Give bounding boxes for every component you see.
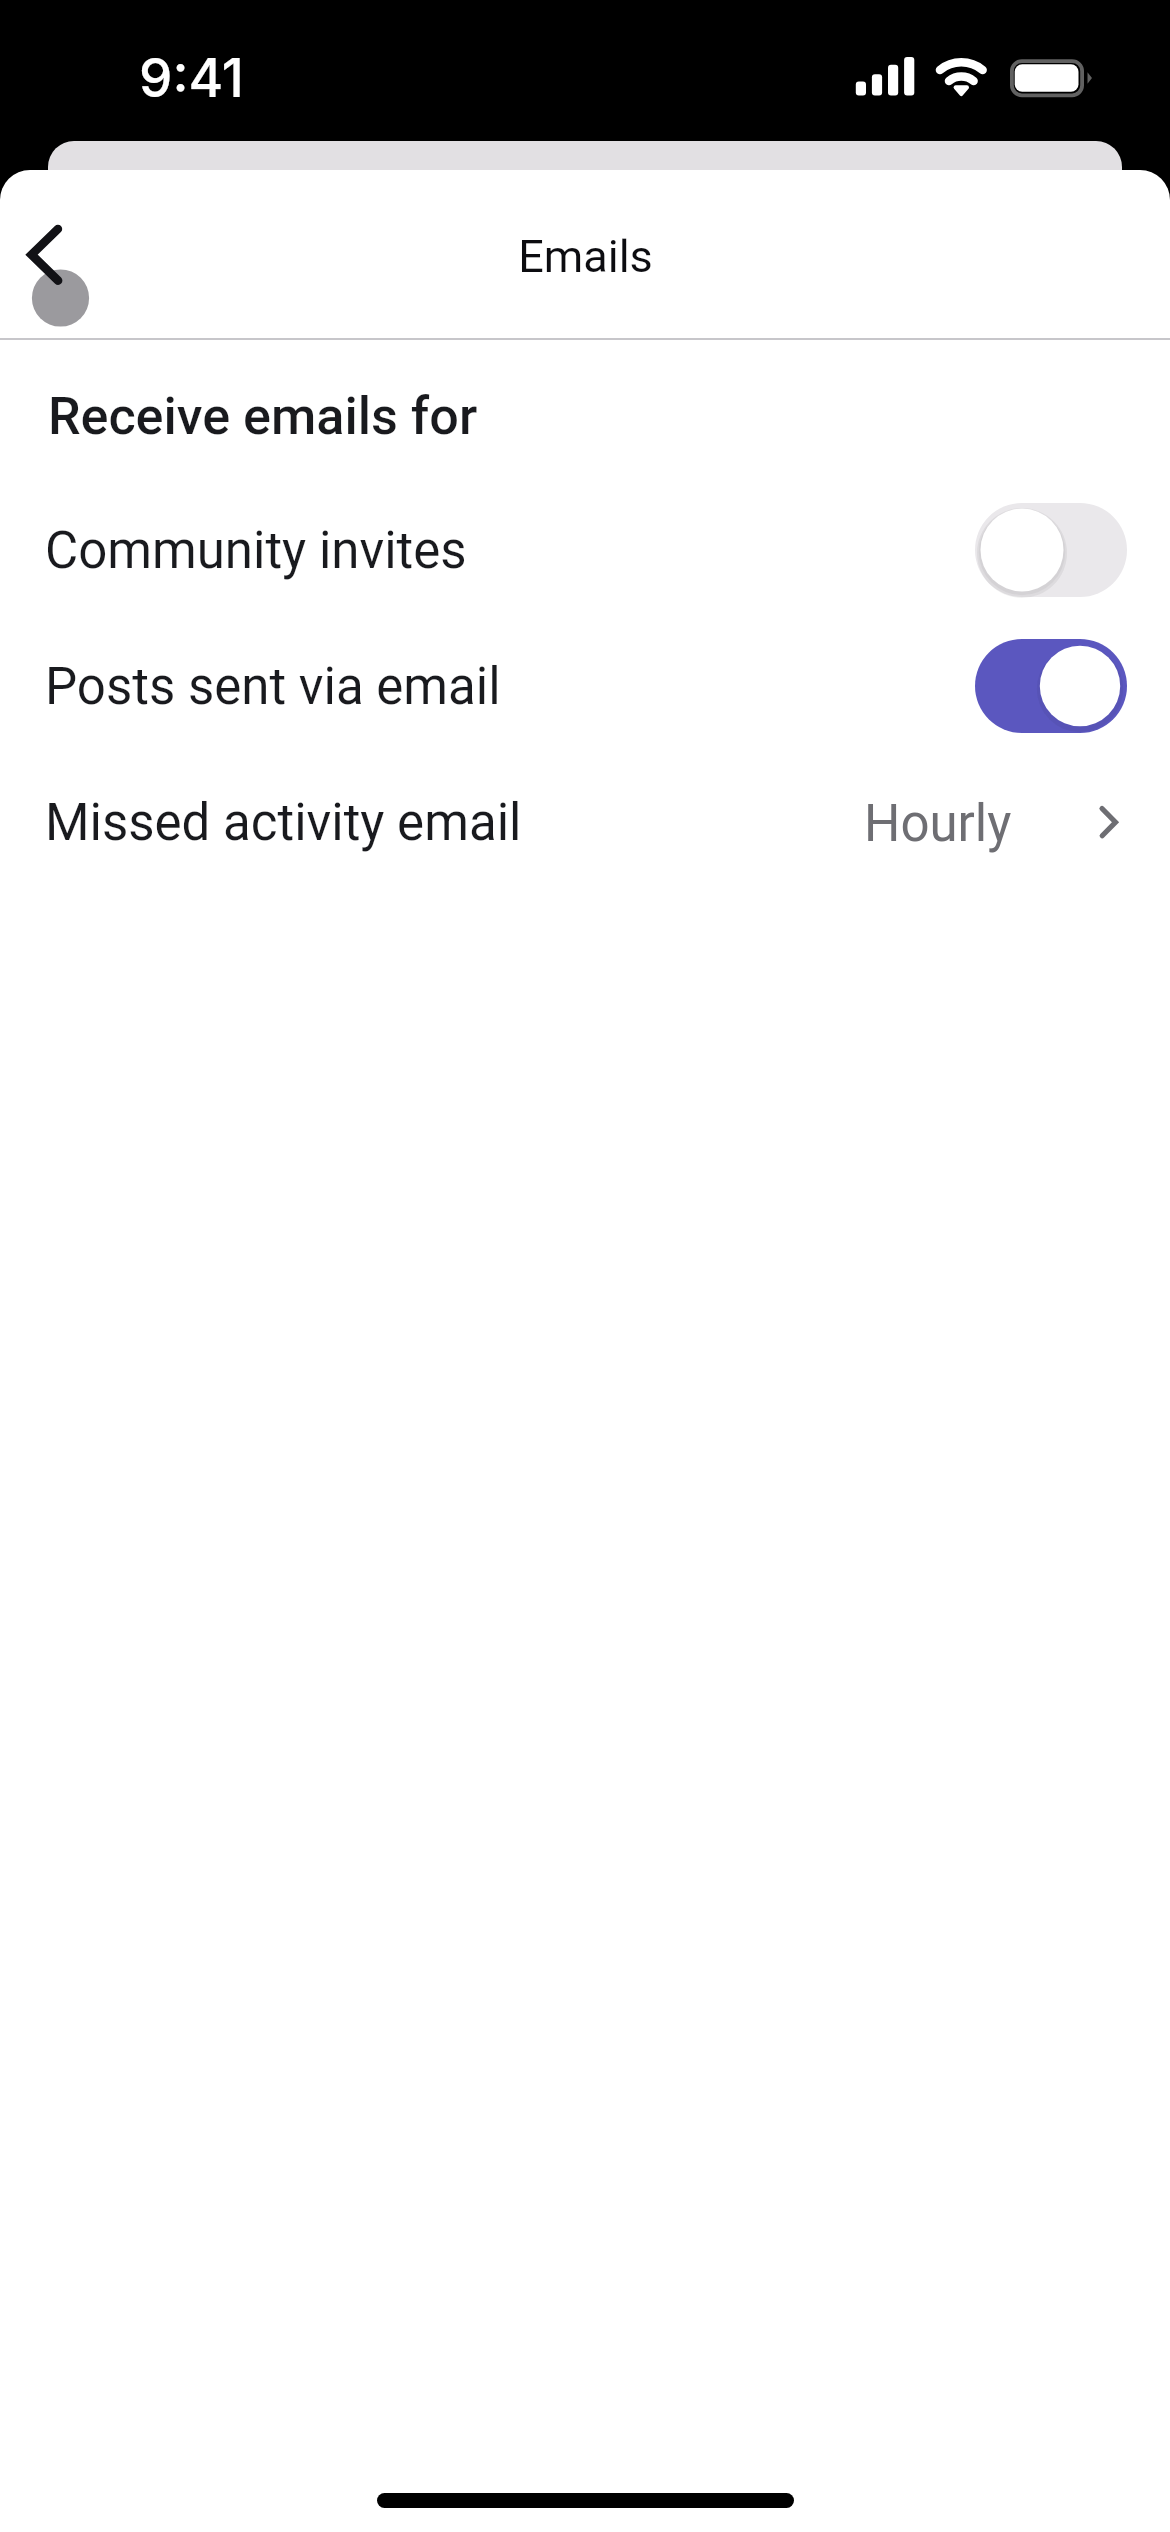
button[interactable]: Switch off bbox=[975, 503, 1127, 597]
staticText: Receive emails for bbox=[48, 386, 478, 447]
staticText: 9:41 bbox=[139, 46, 244, 110]
staticText: Community invites bbox=[45, 521, 467, 581]
button[interactable]: Community invites bbox=[0, 482, 1170, 618]
button[interactable]: Posts sent via email bbox=[0, 618, 1170, 754]
button[interactable]: Back bbox=[0, 170, 122, 339]
button[interactable]: Switch on bbox=[975, 639, 1127, 733]
staticText: Missed activity email bbox=[45, 793, 522, 853]
button[interactable]: Missed activity email bbox=[0, 754, 1170, 890]
staticText: Emails bbox=[518, 230, 653, 283]
staticText: Hourly bbox=[864, 794, 1012, 854]
staticText: Posts sent via email bbox=[45, 657, 501, 717]
button[interactable]: Change frequency bbox=[1098, 796, 1120, 848]
